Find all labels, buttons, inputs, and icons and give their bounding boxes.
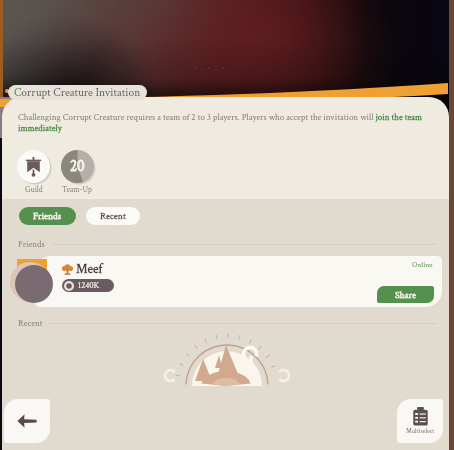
staticText: 1240K bbox=[78, 280, 100, 291]
staticText: Recent bbox=[100, 210, 126, 222]
staticText: Friends bbox=[33, 210, 62, 222]
staticText: Multiselect bbox=[406, 427, 435, 435]
button[interactable]: Recent bbox=[86, 207, 140, 225]
staticText: Meef bbox=[76, 261, 103, 278]
staticText: Team-Up bbox=[62, 184, 93, 194]
staticText: Share bbox=[395, 289, 416, 301]
button[interactable]: Back bbox=[4, 399, 50, 443]
staticText: Guild bbox=[25, 184, 43, 194]
button[interactable]: Guild bbox=[17, 150, 50, 194]
button[interactable]: Meef bbox=[35, 256, 442, 307]
button[interactable]: Corrupt Creature Invitation bbox=[14, 85, 141, 100]
staticText: Friends bbox=[18, 238, 45, 250]
staticText: Online bbox=[412, 260, 433, 270]
button[interactable]: 20 bbox=[61, 150, 94, 194]
staticText: Corrupt Creature Invitation bbox=[14, 85, 141, 100]
staticText: 20 bbox=[70, 157, 85, 176]
staticText: Challenging Corrupt Creature requires a … bbox=[18, 111, 439, 134]
staticText: Recent bbox=[18, 317, 43, 329]
button[interactable]: Share bbox=[377, 286, 434, 303]
button[interactable]: Multiselect bbox=[397, 399, 443, 443]
button[interactable]: Friends bbox=[19, 207, 76, 225]
